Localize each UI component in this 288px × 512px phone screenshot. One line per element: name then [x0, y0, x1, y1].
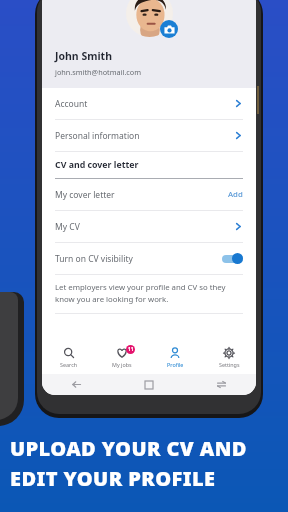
- button[interactable]: Personal information: [42, 120, 256, 151]
- staticText: My cover letter: [55, 189, 115, 201]
- button[interactable]: Settings: [202, 343, 256, 374]
- staticText: Let employers view your profile and CV s…: [55, 282, 238, 304]
- button[interactable]: Search: [42, 343, 95, 374]
- staticText: EDIT YOUR PROFILE: [10, 465, 216, 492]
- button[interactable]: Profile photo: [126, 0, 173, 37]
- button[interactable]: Turn on CV visibility: [42, 243, 256, 274]
- button[interactable]: My cover letter: [42, 179, 256, 210]
- staticText: Account: [55, 98, 88, 110]
- staticText: 11: [128, 346, 134, 353]
- button[interactable]: Recents: [217, 380, 226, 389]
- button[interactable]: Account: [42, 88, 256, 119]
- button[interactable]: My CV: [42, 211, 256, 242]
- staticText: My CV: [55, 221, 80, 233]
- button[interactable]: Profile: [148, 343, 202, 374]
- staticText: Search: [60, 361, 78, 368]
- staticText: My jobs: [112, 361, 132, 368]
- button[interactable]: 11: [95, 343, 148, 374]
- staticText: Profile: [167, 361, 184, 368]
- staticText: John Smith: [55, 49, 112, 63]
- button[interactable]: Home: [145, 381, 153, 389]
- staticText: Settings: [219, 361, 240, 368]
- button[interactable]: Change photo: [160, 20, 178, 38]
- staticText: Turn on CV visibility: [55, 253, 133, 265]
- staticText: CV and cover letter: [55, 159, 139, 171]
- staticText: Add: [228, 189, 243, 200]
- button[interactable]: Back: [72, 380, 81, 389]
- staticText: Personal information: [55, 130, 140, 142]
- staticText: john.smith@hotmail.com: [55, 67, 142, 77]
- staticText: UPLOAD YOUR CV AND: [10, 435, 247, 462]
